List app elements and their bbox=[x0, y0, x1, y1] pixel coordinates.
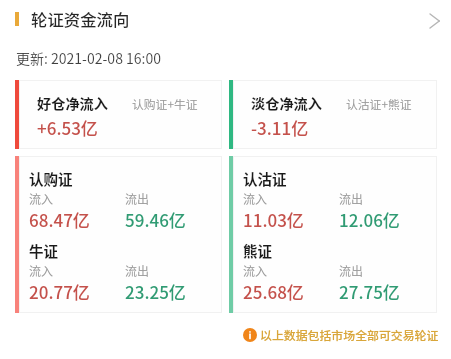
staticText: 12.06亿 bbox=[339, 207, 400, 232]
staticText: 流入 bbox=[29, 190, 54, 207]
staticText: 认购证 bbox=[29, 168, 73, 189]
staticText: 认沽证 bbox=[243, 168, 287, 189]
staticText: 认购证+牛证 bbox=[132, 95, 198, 112]
button[interactable]: 轮证资金流向 bbox=[0, 0, 451, 38]
staticText: 11.03亿 bbox=[243, 207, 304, 232]
other: 查看更多 bbox=[422, 7, 446, 31]
staticText: 流出 bbox=[339, 190, 364, 207]
button[interactable]: 淡仓净流入 bbox=[229, 80, 437, 149]
staticText: 59.46亿 bbox=[125, 207, 186, 232]
staticText: 流出 bbox=[339, 262, 364, 279]
button[interactable]: 认沽证 bbox=[229, 156, 437, 313]
staticText: 20.77亿 bbox=[29, 279, 90, 304]
staticText: 流出 bbox=[125, 190, 150, 207]
button[interactable]: 说明 bbox=[243, 326, 439, 343]
staticText: +6.53亿 bbox=[37, 115, 98, 140]
staticText: 熊证 bbox=[243, 240, 272, 261]
staticText: 牛证 bbox=[29, 240, 58, 261]
staticText: 认沽证+熊证 bbox=[346, 95, 412, 112]
staticText: 27.75亿 bbox=[339, 279, 400, 304]
staticText: 流出 bbox=[125, 262, 150, 279]
staticText: 更新: 2021-02-08 16:00 bbox=[16, 48, 162, 68]
staticText: 25.68亿 bbox=[243, 279, 304, 304]
staticText: 淡仓净流入 bbox=[251, 93, 322, 114]
button[interactable]: 认购证 bbox=[15, 156, 222, 313]
button[interactable]: 好仓净流入 bbox=[15, 80, 222, 149]
staticText: 流入 bbox=[29, 262, 54, 279]
staticText: 轮证资金流向 bbox=[31, 7, 130, 31]
staticText: 68.47亿 bbox=[29, 207, 90, 232]
staticText: 23.25亿 bbox=[125, 279, 186, 304]
staticText: 以上数据包括市场全部可交易轮证 bbox=[260, 326, 439, 343]
staticText: -3.11亿 bbox=[251, 115, 309, 140]
staticText: 好仓净流入 bbox=[37, 93, 108, 114]
staticText: 流入 bbox=[243, 262, 268, 279]
other: 说明 bbox=[243, 328, 257, 342]
staticText: 流入 bbox=[243, 190, 268, 207]
